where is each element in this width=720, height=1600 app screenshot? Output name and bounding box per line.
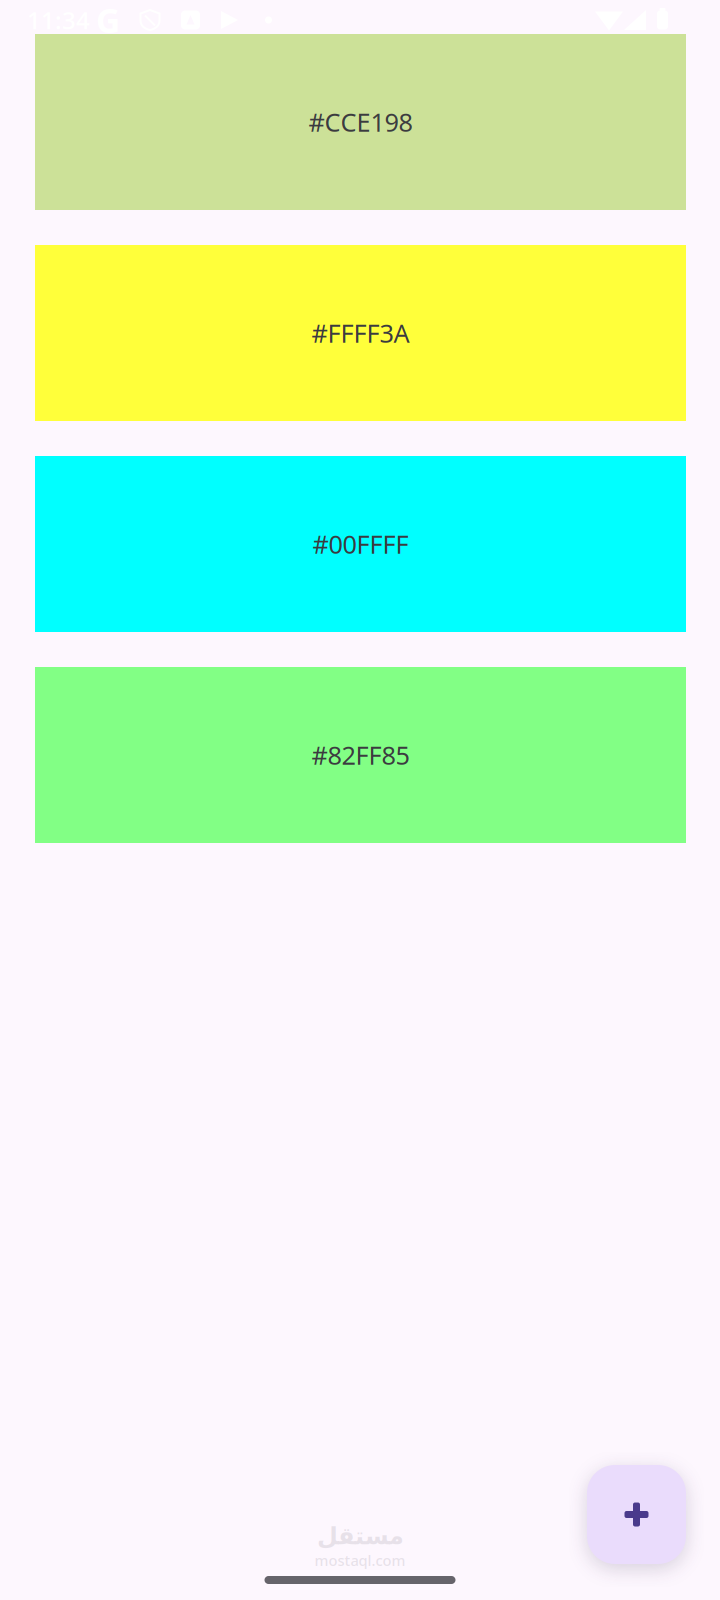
staticText: #00FFFF (312, 527, 408, 561)
button[interactable]: #FFFF3A (35, 245, 686, 421)
button[interactable]: Add color (587, 1465, 686, 1564)
button[interactable]: #82FF85 (35, 667, 686, 843)
button[interactable]: #CCE198 (35, 34, 686, 210)
staticText: G (96, 0, 120, 42)
button[interactable]: #00FFFF (35, 456, 686, 632)
staticText: #82FF85 (311, 738, 409, 772)
staticText: #FFFF3A (311, 316, 409, 350)
staticText: mostaql.com (314, 1550, 405, 1570)
staticText: مستقل (316, 1522, 403, 1549)
staticText: 11:34 (27, 4, 90, 36)
staticText: #CCE198 (308, 105, 412, 139)
